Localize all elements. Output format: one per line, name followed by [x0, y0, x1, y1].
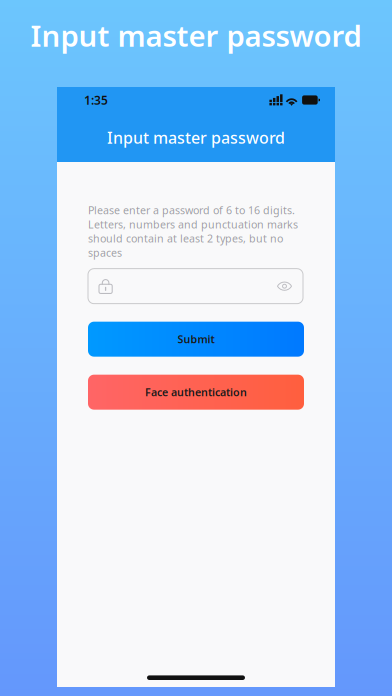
staticText: Face authentication [145, 385, 247, 399]
staticText: Input master password [30, 16, 361, 55]
button[interactable]: Face authentication [88, 375, 304, 410]
staticText: Input master password [107, 127, 285, 148]
button[interactable]: Submit [88, 322, 304, 357]
staticText: Submit [177, 332, 214, 346]
button[interactable]: Master password [88, 269, 303, 304]
staticText: Please enter a password of 6 to 16 digit… [88, 203, 298, 260]
staticText: 1:35 [84, 92, 108, 108]
